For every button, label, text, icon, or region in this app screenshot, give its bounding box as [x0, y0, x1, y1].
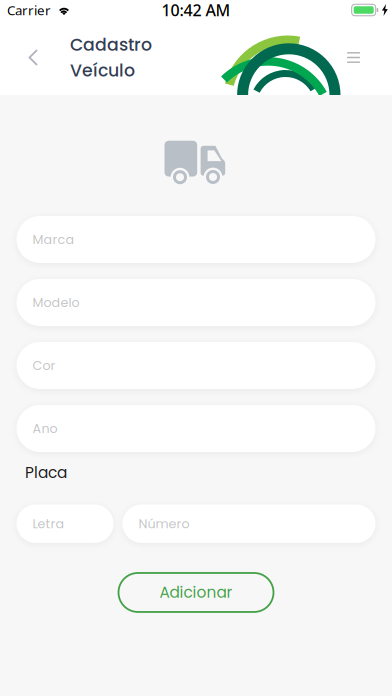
button[interactable]: Back — [0, 33, 70, 82]
staticText: Carrier — [7, 1, 51, 19]
button[interactable]: Adicionar — [118, 573, 273, 612]
staticText: 10:42 AM — [161, 0, 230, 21]
staticText: Ano — [32, 420, 57, 437]
staticText: Número — [138, 515, 189, 532]
staticText: Marca — [32, 231, 74, 248]
staticText: Cor — [32, 357, 55, 374]
staticText: Modelo — [32, 294, 79, 311]
staticText: Placa — [25, 462, 67, 483]
staticText: Veículo — [70, 58, 135, 82]
button[interactable]: Menu — [329, 36, 392, 79]
staticText: Adicionar — [159, 582, 232, 603]
staticText: Cadastro — [70, 32, 152, 57]
staticText: Letra — [32, 515, 64, 532]
